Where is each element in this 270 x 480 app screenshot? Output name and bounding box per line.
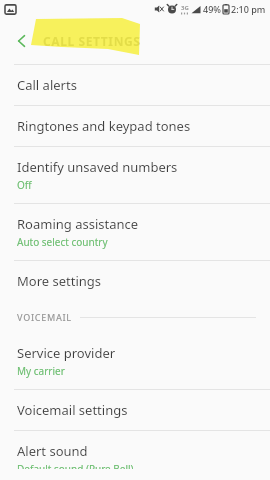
staticText: Voicemail settings xyxy=(17,401,128,419)
staticText: VOICEMAIL xyxy=(17,311,72,323)
button[interactable]: Service provider xyxy=(0,333,270,389)
button[interactable]: Ringtones and keypad tones xyxy=(0,106,270,146)
staticText: Off xyxy=(17,178,32,192)
button[interactable]: More settings xyxy=(0,261,270,301)
staticText: Alert sound xyxy=(17,442,88,460)
staticText: My carrier xyxy=(17,364,65,378)
staticText: Call alerts xyxy=(17,76,77,94)
staticText: Ringtones and keypad tones xyxy=(17,117,191,135)
staticText: Default sound (Pure Bell) xyxy=(17,462,134,469)
staticText: Identify unsaved numbers xyxy=(17,158,178,176)
staticText: Roaming assistance xyxy=(17,215,139,233)
staticText: CALL SETTINGS xyxy=(43,33,141,49)
staticText: 3G xyxy=(181,4,189,12)
button[interactable]: Voicemail settings xyxy=(0,390,270,430)
staticText: More settings xyxy=(17,272,102,290)
staticText: Auto select country xyxy=(17,235,108,249)
button[interactable]: Roaming assistance xyxy=(0,204,270,260)
staticText: 2:10 pm xyxy=(231,3,266,15)
staticText: Service provider xyxy=(17,344,116,362)
button[interactable]: Identify unsaved numbers xyxy=(0,147,270,203)
staticText: 49% xyxy=(203,3,221,15)
button[interactable]: Navigate up xyxy=(8,27,36,55)
button[interactable]: Alert sound xyxy=(0,431,270,480)
button[interactable]: Call alerts xyxy=(0,65,270,105)
